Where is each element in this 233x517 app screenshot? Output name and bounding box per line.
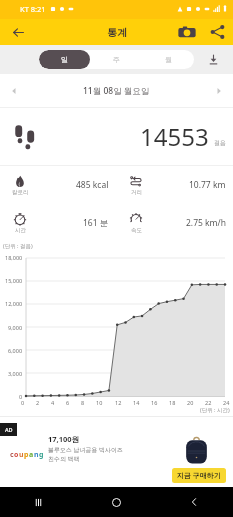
staticText: 20 [187, 399, 194, 406]
staticText: 485 kcal [76, 179, 109, 191]
button[interactable]: 거리 [116, 166, 233, 204]
staticText: 18,000 [5, 254, 23, 261]
staticText: 2.75 km/h [186, 217, 226, 229]
button[interactable]: Next day [205, 74, 233, 107]
staticText: 15,000 [5, 277, 23, 284]
staticText: 3,000 [8, 370, 23, 377]
staticText: 14 [133, 399, 140, 406]
staticText: 10 [96, 399, 103, 406]
staticText: g [39, 450, 44, 460]
button[interactable]: 속도 [116, 204, 233, 242]
staticText: 8 [81, 399, 85, 406]
staticText: 지금 구매하기 [177, 471, 221, 481]
button[interactable]: Back [155, 487, 233, 517]
button[interactable]: 월 [142, 50, 194, 69]
staticText: c [10, 450, 14, 460]
staticText: 6,000 [8, 347, 23, 354]
staticText: 18 [169, 399, 176, 406]
staticText: 161 분 [83, 217, 109, 229]
staticText: 월 [165, 55, 172, 64]
button[interactable]: 주 [90, 50, 142, 69]
staticText: KT 8:21 [20, 4, 46, 14]
staticText: o [14, 450, 19, 460]
button[interactable]: AD [0, 416, 233, 487]
staticText: u [19, 450, 24, 460]
staticText: 속도 [131, 227, 142, 234]
button[interactable]: Back [0, 19, 36, 45]
staticText: 통계 [107, 26, 127, 39]
staticText: AD [5, 426, 13, 433]
button[interactable]: 지금 구매하기 [172, 468, 226, 483]
button[interactable]: Camera [171, 19, 202, 45]
staticText: 일 [61, 55, 68, 64]
staticText: 11월 08일 월요일 [83, 85, 150, 97]
button[interactable]: 시간 [0, 204, 116, 242]
button[interactable]: 칼로리 [0, 166, 116, 204]
staticText: 걸음 [214, 139, 226, 147]
staticText: 12,000 [5, 300, 23, 307]
staticText: 친수의 백팩 [48, 455, 80, 463]
button[interactable]: Home [77, 487, 155, 517]
staticText: 12 [115, 399, 122, 406]
staticText: 6 [66, 399, 70, 406]
staticText: (단위 : 시간) [200, 406, 230, 414]
staticText: p [24, 450, 29, 460]
button[interactable]: Share [202, 19, 233, 45]
staticText: 주 [113, 55, 120, 64]
button[interactable]: Previous day [0, 74, 28, 107]
staticText: 0 [21, 399, 25, 406]
staticText: 4 [51, 399, 55, 406]
button[interactable]: 일 [39, 50, 90, 69]
staticText: (단위 : 걸음) [3, 242, 33, 250]
staticText: 0 [19, 393, 23, 400]
staticText: 시간 [15, 227, 26, 234]
staticText: n [34, 450, 39, 460]
staticText: 9,000 [8, 324, 23, 331]
button[interactable]: Download [194, 45, 233, 74]
staticText: 14553 [140, 120, 209, 153]
staticText: 17,100원 [48, 434, 80, 444]
staticText: 거리 [131, 189, 142, 196]
button[interactable]: Recent apps [0, 487, 77, 517]
staticText: 블루오스 남녀공용 빅사이즈 [48, 446, 124, 454]
staticText: 22 [205, 399, 212, 406]
staticText: 10.77 km [189, 179, 226, 191]
staticText: 칼로리 [12, 189, 29, 196]
staticText: a [29, 450, 34, 460]
staticText: 2 [36, 399, 40, 406]
staticText: 24 [223, 399, 230, 406]
staticText: 16 [151, 399, 158, 406]
